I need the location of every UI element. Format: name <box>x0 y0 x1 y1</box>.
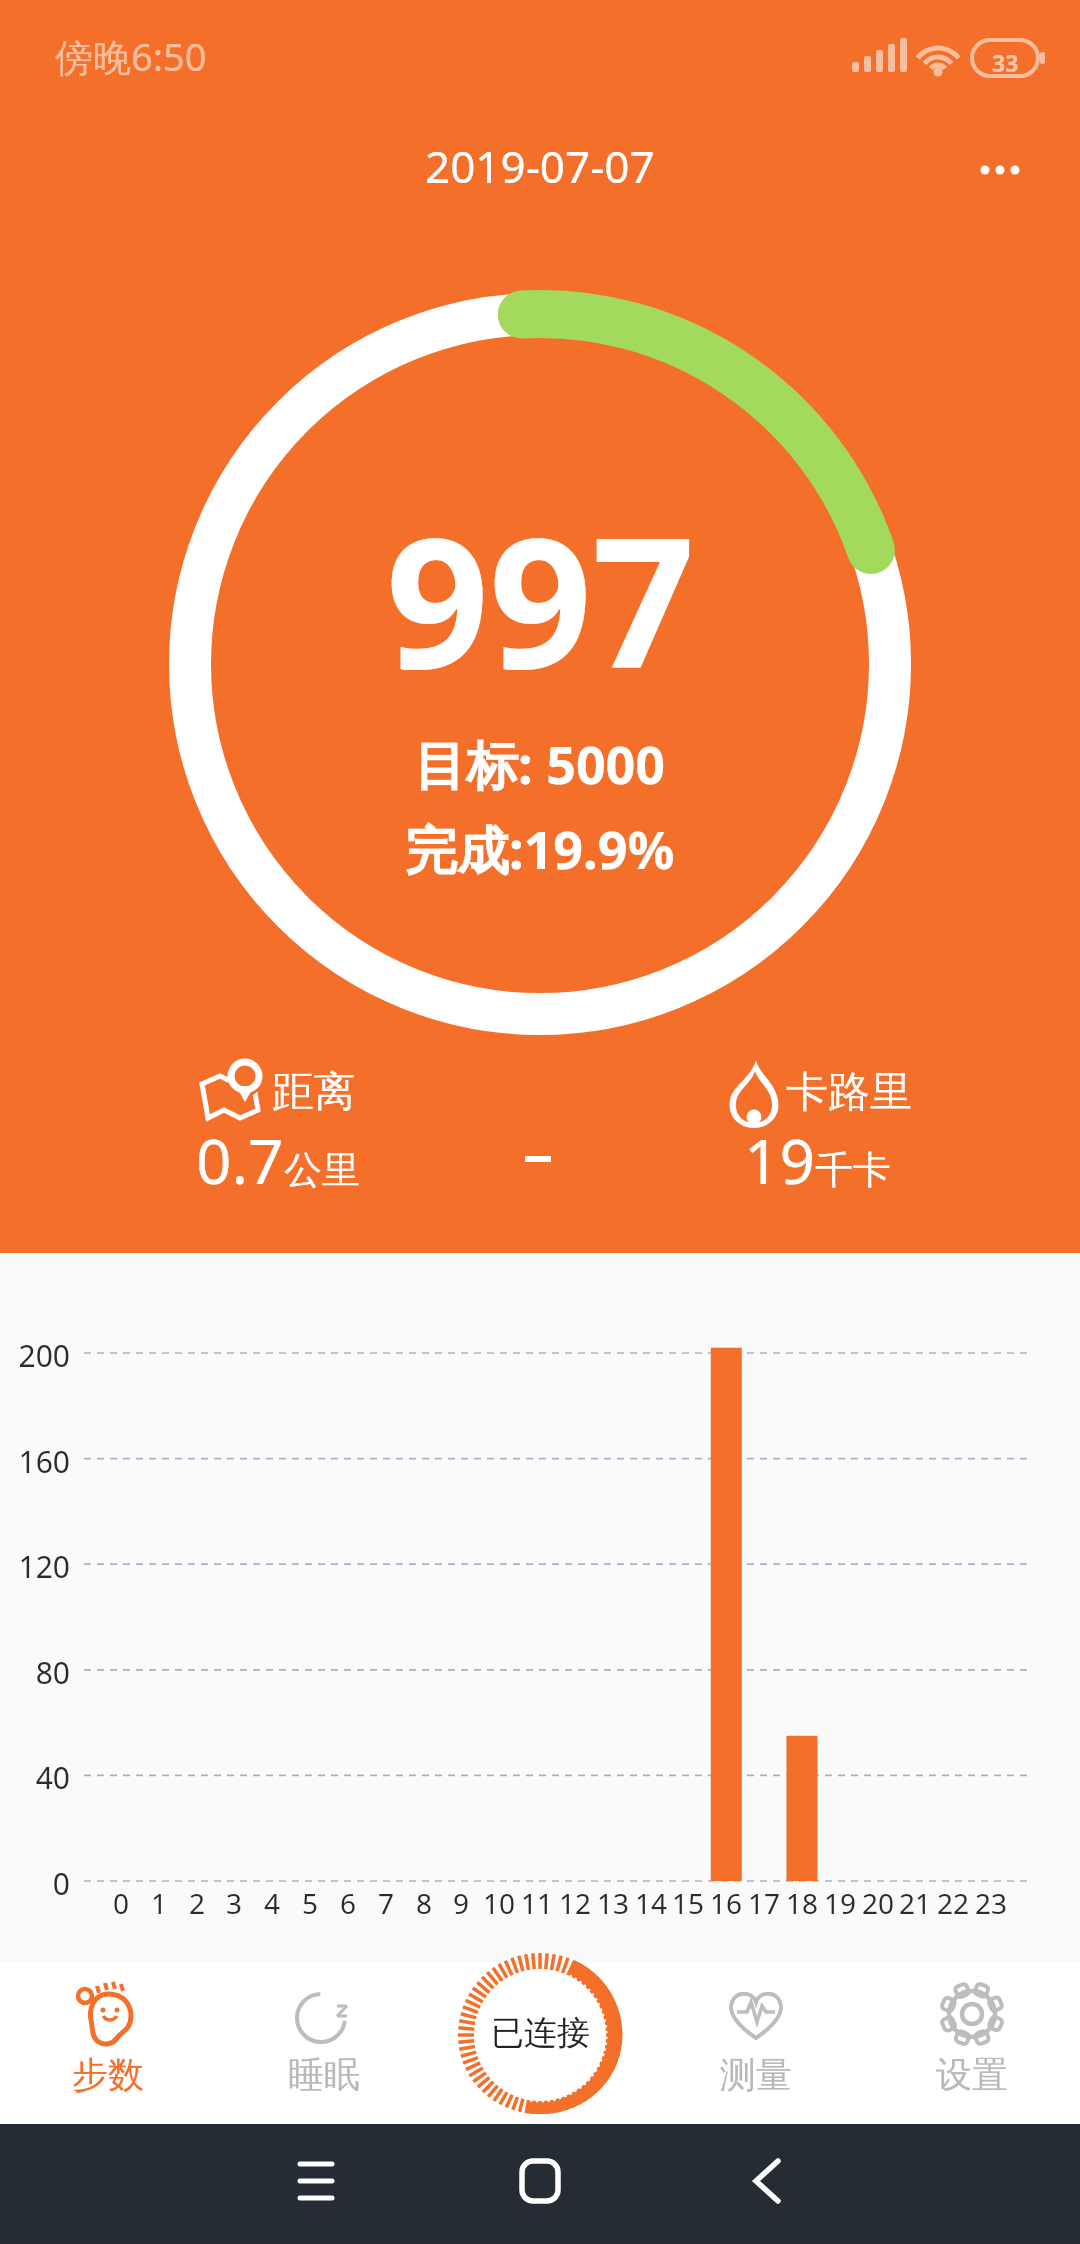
button[interactable] <box>960 130 1050 200</box>
staticText: 6 <box>329 1884 367 1922</box>
staticText: 5 <box>291 1884 329 1922</box>
staticText: 120 <box>0 1546 70 1587</box>
staticText: 睡眠 <box>288 2052 360 2097</box>
staticText: 公里 <box>284 1146 360 1194</box>
staticText: 19 <box>744 1118 815 1202</box>
staticText: 3 <box>215 1884 253 1922</box>
staticText: 0.7 <box>196 1118 284 1202</box>
staticText: 2 <box>178 1884 216 1922</box>
staticText: 距离 <box>272 1066 356 1119</box>
button[interactable]: 步数 <box>0 1962 216 2124</box>
staticText: 14 <box>632 1884 670 1922</box>
button[interactable]: 测量 <box>648 1962 864 2124</box>
staticText: 8 <box>405 1884 443 1922</box>
button[interactable]: 设置 <box>864 1962 1080 2124</box>
staticText: 完成:19.9% <box>405 813 675 884</box>
staticText: 卡路里 <box>786 1066 912 1119</box>
staticText: 22 <box>934 1884 972 1922</box>
staticText: 15 <box>669 1884 707 1922</box>
button[interactable]: 已连接 <box>457 1952 623 2114</box>
staticText: 13 <box>594 1884 632 1922</box>
staticText: 9 <box>442 1884 480 1922</box>
button[interactable] <box>716 2134 816 2234</box>
staticText: 0 <box>102 1884 140 1922</box>
staticText: 1 <box>140 1884 178 1922</box>
staticText: 步数 <box>72 2052 144 2097</box>
staticText: 997 <box>386 476 695 721</box>
staticText: 40 <box>0 1757 70 1798</box>
button[interactable]: 睡眠 <box>216 1962 432 2124</box>
staticText: 0 <box>0 1863 70 1904</box>
staticText: 80 <box>0 1652 70 1693</box>
staticText: 200 <box>0 1335 70 1376</box>
button[interactable] <box>266 2134 366 2234</box>
staticText: 17 <box>745 1884 783 1922</box>
staticText: 设置 <box>936 2052 1008 2097</box>
staticText: 19 <box>821 1884 859 1922</box>
staticText: 7 <box>367 1884 405 1922</box>
staticText: 千卡 <box>815 1146 891 1194</box>
staticText: 20 <box>859 1884 897 1922</box>
staticText: 33 <box>992 47 1019 78</box>
staticText: 21 <box>896 1884 934 1922</box>
staticText: 16 <box>707 1884 745 1922</box>
staticText: 160 <box>0 1441 70 1482</box>
staticText: 测量 <box>720 2052 792 2097</box>
staticText: 目标: 5000 <box>414 728 666 799</box>
staticText: 已连接 <box>491 2012 590 2054</box>
button[interactable] <box>490 2134 590 2234</box>
staticText: 4 <box>253 1884 291 1922</box>
staticText: 23 <box>972 1884 1010 1922</box>
staticText: 18 <box>783 1884 821 1922</box>
staticText: 10 <box>480 1884 518 1922</box>
staticText: 11 <box>518 1884 556 1922</box>
staticText: 2019-07-07 <box>425 136 655 196</box>
staticText: 12 <box>556 1884 594 1922</box>
staticText: 傍晚6:50 <box>55 30 207 82</box>
